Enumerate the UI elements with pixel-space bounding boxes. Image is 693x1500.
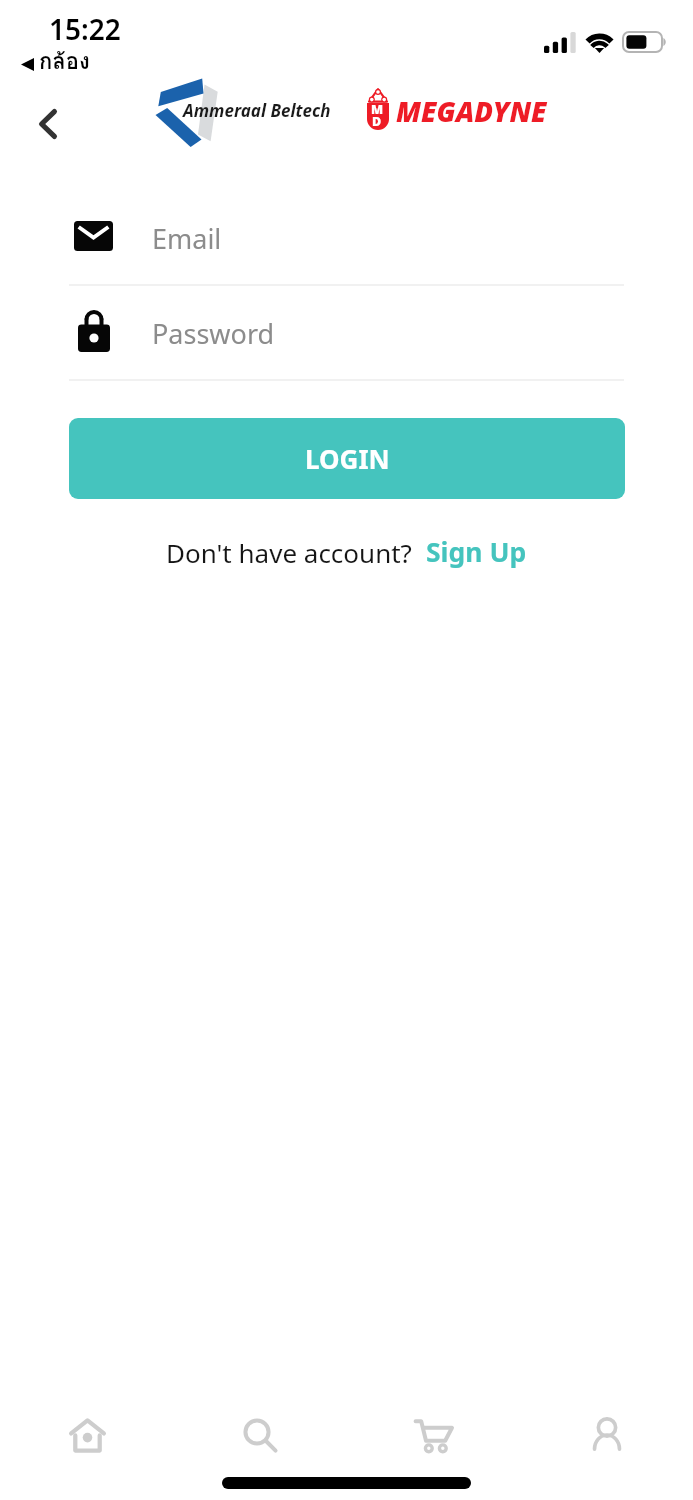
button[interactable]: Email xyxy=(69,200,624,272)
button[interactable]: Password xyxy=(69,295,624,367)
button[interactable]: Search xyxy=(174,1400,347,1470)
staticText: Don't have account? xyxy=(166,535,412,570)
button[interactable]: Back xyxy=(18,94,78,154)
button[interactable]: Home xyxy=(0,1400,174,1470)
staticText: 15:22 xyxy=(49,10,121,48)
staticText: Ammeraal Beltech xyxy=(183,99,331,122)
staticText: Email xyxy=(152,220,222,257)
button[interactable]: Profile xyxy=(520,1400,693,1470)
staticText: D xyxy=(372,113,382,130)
button[interactable]: LOGIN xyxy=(69,418,625,499)
staticText: Sign Up xyxy=(426,534,527,570)
staticText: กล้อง xyxy=(39,44,90,79)
button[interactable]: Cart xyxy=(347,1400,520,1470)
staticText: Password xyxy=(152,315,275,352)
staticText: MEGADYNE xyxy=(396,93,547,130)
staticText: M xyxy=(371,101,384,118)
button[interactable]: Sign Up xyxy=(426,534,527,570)
staticText: LOGIN xyxy=(305,441,390,476)
